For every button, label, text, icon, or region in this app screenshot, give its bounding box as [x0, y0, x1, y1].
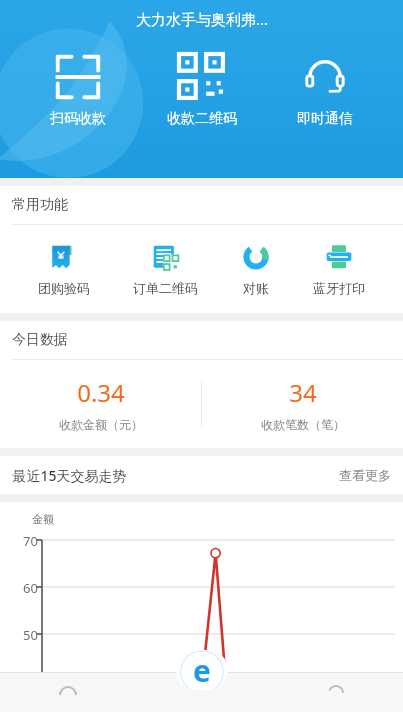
staticText: 今日数据	[12, 331, 68, 349]
staticText: 收款二维码	[167, 110, 237, 128]
button[interactable]: 查看更多	[327, 459, 403, 491]
button[interactable]: 即时通信	[287, 52, 363, 130]
staticText: 50	[23, 626, 38, 644]
staticText: 金额	[32, 512, 54, 526]
button[interactable]: 0.34	[0, 376, 201, 432]
button[interactable]: 团购验码	[32, 239, 96, 300]
staticText: 34	[289, 376, 317, 409]
staticText: 查看更多	[339, 467, 391, 483]
button[interactable]: Profile	[269, 672, 403, 712]
button[interactable]: 订单二维码	[127, 239, 204, 300]
button[interactable]: 34	[202, 376, 403, 432]
button[interactable]: 收款二维码	[157, 52, 247, 130]
button[interactable]: 蓝牙打印	[307, 239, 371, 300]
button[interactable]: 扫码收款	[40, 52, 116, 130]
staticText: 70	[23, 532, 38, 550]
staticText: 对账	[243, 280, 269, 296]
button[interactable]: 对账	[236, 239, 276, 300]
staticText: 订单二维码	[133, 280, 198, 296]
staticText: 常用功能	[12, 196, 68, 214]
staticText: 大力水手与奥利弗…	[136, 9, 268, 29]
button[interactable]: Home	[0, 672, 135, 712]
button[interactable]: 主页	[176, 650, 228, 690]
staticText: 60	[23, 579, 38, 597]
staticText: 扫码收款	[50, 110, 106, 128]
staticText: 团购验码	[38, 280, 90, 296]
staticText: 收款笔数（笔）	[261, 417, 345, 432]
staticText: 收款金额（元）	[59, 417, 143, 432]
staticText: 0.34	[77, 376, 125, 409]
staticText: 即时通信	[297, 110, 353, 128]
staticText: 蓝牙打印	[313, 280, 365, 296]
staticText: 最近15天交易走势	[12, 466, 127, 485]
staticText: e	[193, 650, 211, 690]
